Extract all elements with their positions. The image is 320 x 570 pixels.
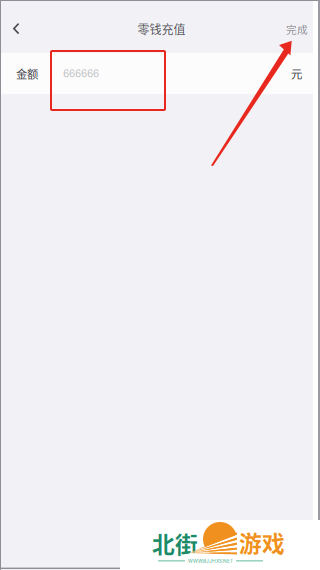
staticText: 完成 [286, 21, 308, 37]
staticText: WWW.BJJHXS.NET [188, 558, 233, 564]
staticText: 元 [291, 65, 302, 82]
staticText: 零钱充值 [137, 20, 185, 38]
staticText: 游戏 [239, 526, 285, 559]
button[interactable]: 金额 [0, 53, 313, 94]
staticText: 北街 [152, 527, 198, 560]
button[interactable]: 完成 [286, 15, 313, 43]
button[interactable]: Back [0, 15, 33, 43]
staticText: 金额 [16, 65, 38, 82]
staticText: 666666 [63, 67, 99, 80]
